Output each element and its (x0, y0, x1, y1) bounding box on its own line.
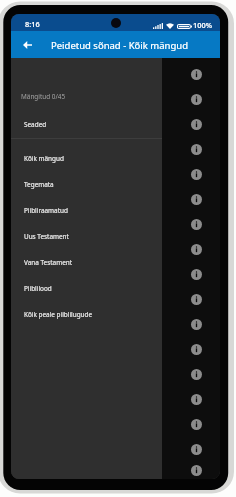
other: Info (191, 244, 202, 255)
button[interactable]: Info (162, 362, 220, 387)
staticText: Seaded (24, 120, 47, 129)
other: Info (191, 69, 202, 80)
button[interactable]: Info (162, 237, 220, 262)
other: Info (191, 219, 202, 230)
other: Info (191, 419, 202, 430)
button[interactable]: Info (162, 112, 220, 137)
button[interactable]: Piiblilood (11, 275, 162, 301)
button[interactable]: Info (162, 437, 220, 462)
button[interactable]: Info (162, 87, 220, 112)
button[interactable]: Info (162, 312, 220, 337)
staticText: Kõik peale piiblilugude (24, 310, 93, 319)
other: Info (191, 194, 202, 205)
staticText: Vana Testament (24, 258, 72, 267)
staticText: Mängitud 0/45 (21, 92, 66, 101)
button[interactable]: Info (162, 337, 220, 362)
other: Info (191, 319, 202, 330)
other: Info (191, 294, 202, 305)
button[interactable]: Info (162, 262, 220, 287)
button[interactable]: Info (162, 162, 220, 187)
button[interactable]: Info (162, 412, 220, 437)
staticText: Kõik mängud (24, 154, 64, 163)
button[interactable]: Info (162, 387, 220, 412)
other: Info (191, 94, 202, 105)
button[interactable]: Info (162, 462, 220, 479)
other: Info (191, 369, 202, 380)
staticText: Tegemata (24, 180, 54, 189)
staticText: Peidetud sõnad - Kõik mängud (51, 39, 188, 52)
other: Info (191, 344, 202, 355)
button[interactable]: Vana Testament (11, 249, 162, 275)
button[interactable]: Info (162, 287, 220, 312)
button[interactable]: Info (162, 212, 220, 237)
staticText: Uus Testament (24, 232, 69, 241)
button[interactable]: Uus Testament (11, 223, 162, 249)
button[interactable]: Back (16, 34, 38, 56)
other: Info (191, 169, 202, 180)
other: Info (191, 119, 202, 130)
button[interactable]: Info (162, 62, 220, 87)
button[interactable]: Kõik peale piiblilugude (11, 301, 162, 327)
other: Info (191, 394, 202, 405)
staticText: 8:16 (25, 19, 40, 29)
button[interactable]: Piibliraamatud (11, 197, 162, 223)
other: Info (191, 444, 202, 455)
button[interactable]: Seaded (11, 110, 162, 138)
other: Info (191, 465, 202, 476)
button[interactable]: Info (162, 137, 220, 162)
button[interactable]: Tegemata (11, 171, 162, 197)
button[interactable]: Kõik mängud (11, 145, 162, 171)
other: Info (191, 144, 202, 155)
button[interactable]: Info (162, 187, 220, 212)
other: Info (191, 269, 202, 280)
staticText: Piibliraamatud (24, 206, 68, 215)
staticText: Piiblilood (24, 284, 52, 293)
staticText: 100% (193, 20, 212, 30)
